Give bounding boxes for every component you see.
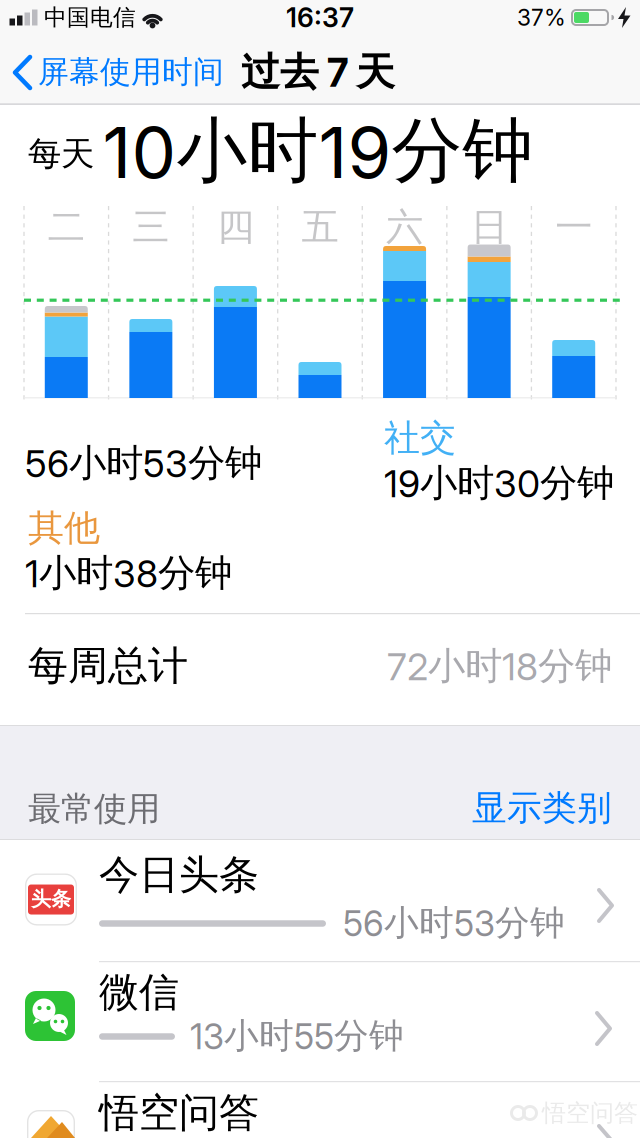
staticText: 每周总计 (28, 641, 188, 690)
button[interactable]: 显示类别 (432, 784, 612, 832)
staticText: 最常使用 (28, 788, 160, 829)
staticText: 37% (517, 4, 566, 31)
staticText: 中国电信 (44, 4, 136, 31)
staticText: 16:37 (286, 2, 354, 33)
staticText: 二 (48, 204, 85, 250)
staticText: 三 (132, 204, 169, 250)
staticText: 其他 (28, 506, 100, 550)
staticText: 四 (217, 204, 254, 250)
staticText: 56小时53分钟 (343, 902, 565, 944)
staticText: 每天 (28, 133, 94, 174)
staticText: 悟空问答 (542, 1098, 638, 1128)
staticText: 微信 (99, 968, 179, 1017)
staticText: 六 (386, 204, 423, 250)
staticText: 屏幕使用时间 (38, 53, 224, 91)
button[interactable]: 微信 (0, 962, 640, 1082)
button[interactable]: 悟空问答 (0, 1082, 640, 1138)
staticText: 显示类别 (472, 787, 612, 829)
staticText: 过去 7 天 (241, 48, 395, 96)
staticText: 社交 (384, 416, 456, 460)
staticText: 一 (555, 204, 592, 250)
staticText: 悟空问答 (99, 1088, 259, 1137)
staticText: 头条 (31, 887, 71, 911)
staticText: 10小时19分钟 (102, 108, 533, 194)
staticText: 日 (471, 204, 508, 250)
staticText: 13小时55分钟 (190, 1015, 404, 1057)
button[interactable]: 返回 屏幕使用时间 (6, 47, 242, 99)
button[interactable]: 头条 (0, 840, 640, 962)
staticText: 19小时30分钟 (384, 460, 614, 506)
staticText: 今日头条 (99, 850, 259, 899)
staticText: 1小时38分钟 (25, 550, 232, 596)
staticText: 五 (301, 204, 338, 250)
staticText: 56小时53分钟 (25, 440, 262, 486)
staticText: 72小时18分钟 (387, 643, 612, 689)
